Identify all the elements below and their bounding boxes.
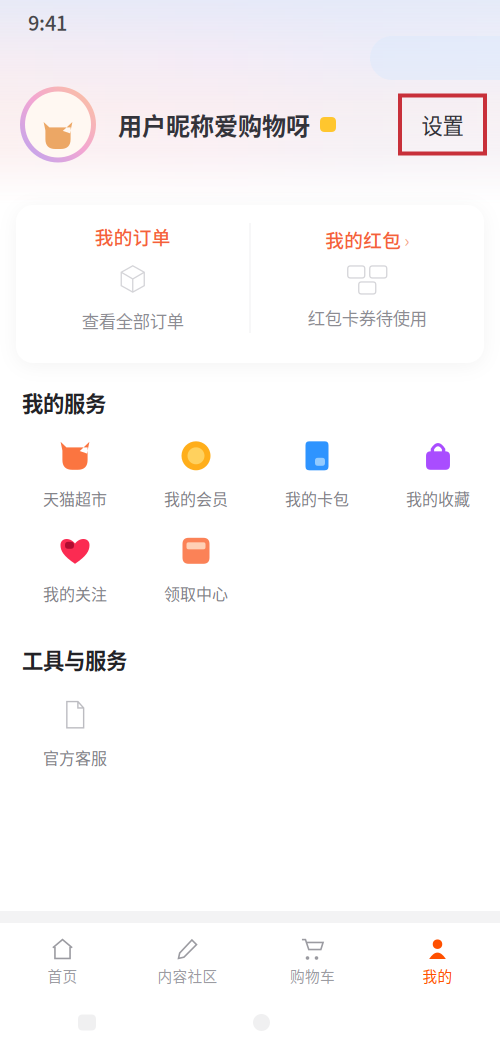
- button[interactable]: 我的收藏: [377, 428, 498, 523]
- staticText: 我的卡包: [285, 487, 349, 510]
- button[interactable]: 我的: [375, 923, 500, 989]
- button[interactable]: 天猫超市: [14, 428, 135, 523]
- staticText: 我的红包: [325, 226, 401, 253]
- staticText: 红包卡券待使用: [308, 305, 427, 330]
- staticText: 我的: [422, 965, 452, 986]
- button[interactable]: 设置: [400, 95, 485, 153]
- staticText: 天猫超市: [43, 487, 107, 510]
- staticText: 用户昵称爱购物呀: [118, 107, 310, 142]
- staticText: 领取中心: [164, 582, 228, 605]
- staticText: 9:41: [28, 7, 67, 36]
- staticText: 内容社区: [157, 965, 217, 986]
- button[interactable]: 我的卡包: [256, 428, 377, 523]
- staticText: ›: [404, 227, 409, 252]
- button[interactable]: 官方客服: [14, 687, 135, 782]
- staticText: 我的服务: [22, 387, 106, 418]
- button[interactable]: 我的会员: [135, 428, 256, 523]
- staticText: 查看全部订单: [82, 308, 184, 333]
- staticText: 购物车: [290, 965, 335, 986]
- staticText: 我的订单: [95, 223, 171, 250]
- button[interactable]: 内容社区: [125, 923, 250, 989]
- button[interactable]: 我的关注: [14, 523, 135, 618]
- button[interactable]: 我的红包: [250, 226, 484, 330]
- button[interactable]: 首页: [0, 923, 125, 989]
- button[interactable]: 我的订单: [16, 223, 249, 333]
- staticText: 我的收藏: [406, 487, 470, 510]
- staticText: 工具与服务: [22, 644, 127, 675]
- button[interactable]: 购物车: [250, 923, 375, 989]
- staticText: 官方客服: [43, 746, 107, 769]
- staticText: 我的会员: [164, 487, 228, 510]
- button[interactable]: 领取中心: [135, 523, 256, 618]
- staticText: 首页: [47, 965, 77, 986]
- staticText: 我的关注: [43, 582, 107, 605]
- staticText: 设置: [421, 109, 463, 140]
- button[interactable]: 个人头像: [20, 86, 96, 162]
